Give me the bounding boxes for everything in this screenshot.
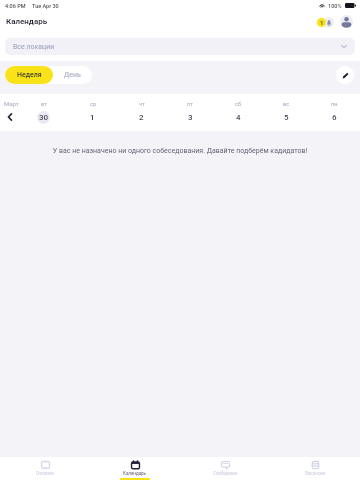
staticText: У вас не назначено ни одного собеседован… xyxy=(0,147,360,155)
staticText: Tue Apr 30 xyxy=(32,3,59,9)
button[interactable]: Неделя xyxy=(5,66,53,84)
button[interactable]: День xyxy=(53,66,92,84)
staticText: Календарь xyxy=(6,17,48,26)
staticText: 1 xyxy=(320,19,324,26)
staticText: ср xyxy=(90,101,96,107)
button[interactable]: Edit xyxy=(336,66,354,84)
button[interactable]: Все локации xyxy=(5,38,355,55)
button[interactable]: 30 xyxy=(37,111,50,124)
staticText: Март xyxy=(4,100,19,107)
button[interactable]: 1 xyxy=(86,111,99,124)
button[interactable]: Profile xyxy=(340,15,353,28)
button[interactable]: 6 xyxy=(328,111,341,124)
button[interactable]: Сообщения xyxy=(180,457,270,480)
staticText: 2 xyxy=(139,113,144,122)
staticText: 4:06 PM xyxy=(5,3,26,9)
staticText: 3 xyxy=(188,113,193,122)
staticText: пт xyxy=(187,101,193,107)
staticText: Сообщения xyxy=(213,471,238,476)
staticText: сб xyxy=(235,101,241,107)
button[interactable]: Календарь xyxy=(90,457,180,480)
staticText: 1 xyxy=(90,113,95,122)
staticText: День xyxy=(64,71,81,79)
staticText: Вакансии xyxy=(305,471,326,476)
button[interactable]: Отклики xyxy=(0,457,90,480)
staticText: Отклики xyxy=(36,471,54,476)
staticText: 4 xyxy=(236,113,241,122)
staticText: Календарь xyxy=(123,471,147,476)
button[interactable]: 3 xyxy=(184,111,197,124)
staticText: чт xyxy=(139,101,145,107)
staticText: вс xyxy=(283,101,290,107)
staticText: вт xyxy=(41,101,47,107)
staticText: 5 xyxy=(284,113,289,122)
staticText: 6 xyxy=(332,113,337,122)
staticText: 30 xyxy=(39,113,49,122)
staticText: пн xyxy=(331,101,338,107)
staticText: Неделя xyxy=(17,71,42,79)
button[interactable]: 2 xyxy=(135,111,148,124)
button[interactable]: Вакансии xyxy=(270,457,360,480)
button[interactable]: 5 xyxy=(280,111,293,124)
button[interactable]: Notifications xyxy=(323,17,334,28)
staticText: Все локации xyxy=(13,43,55,51)
staticText: 100% xyxy=(328,3,342,9)
button[interactable]: Previous week xyxy=(0,110,19,124)
button[interactable]: 4 xyxy=(232,111,245,124)
